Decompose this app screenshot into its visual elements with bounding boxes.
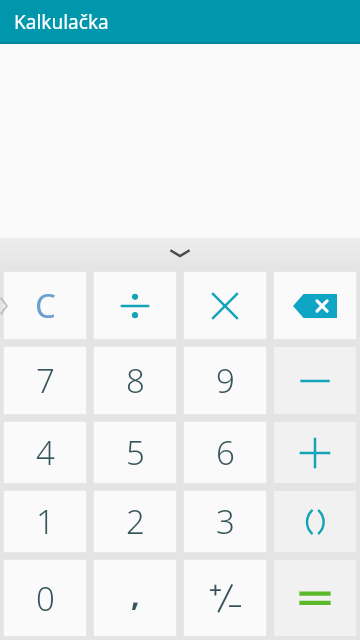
button[interactable]: 1 [3, 490, 87, 553]
button[interactable]: 7 [3, 346, 87, 415]
staticText: 2 [126, 499, 145, 544]
button[interactable]: C [3, 271, 87, 340]
button[interactable] [183, 271, 267, 340]
button[interactable]: 0 [3, 559, 87, 637]
button[interactable]: Backspace [273, 271, 357, 340]
button[interactable] [273, 421, 357, 484]
staticText: 6 [216, 430, 235, 475]
button[interactable] [273, 559, 357, 637]
button[interactable] [93, 271, 177, 340]
staticText: , [131, 574, 140, 615]
button[interactable]: 5 [93, 421, 177, 484]
staticText: 1 [36, 499, 55, 544]
staticText: 8 [126, 358, 145, 403]
button[interactable]: 4 [3, 421, 87, 484]
button[interactable]: Open panel [0, 293, 9, 319]
staticText: 4 [36, 430, 55, 475]
staticText: 3 [216, 499, 235, 544]
button[interactable] [273, 346, 357, 415]
button[interactable] [183, 559, 267, 637]
button[interactable]: 2 [93, 490, 177, 553]
staticText: 9 [216, 358, 235, 403]
staticText: 0 [36, 576, 55, 621]
staticText: 7 [36, 358, 55, 403]
button[interactable]: 3 [183, 490, 267, 553]
button[interactable]: Collapse keypad [0, 238, 360, 268]
staticText: 5 [126, 430, 145, 475]
button[interactable]: 8 [93, 346, 177, 415]
button[interactable] [273, 490, 357, 553]
button[interactable]: , [93, 559, 177, 637]
button[interactable]: 9 [183, 346, 267, 415]
staticText: Kalkulačka [14, 9, 109, 35]
staticText: C [35, 283, 56, 328]
button[interactable]: 6 [183, 421, 267, 484]
